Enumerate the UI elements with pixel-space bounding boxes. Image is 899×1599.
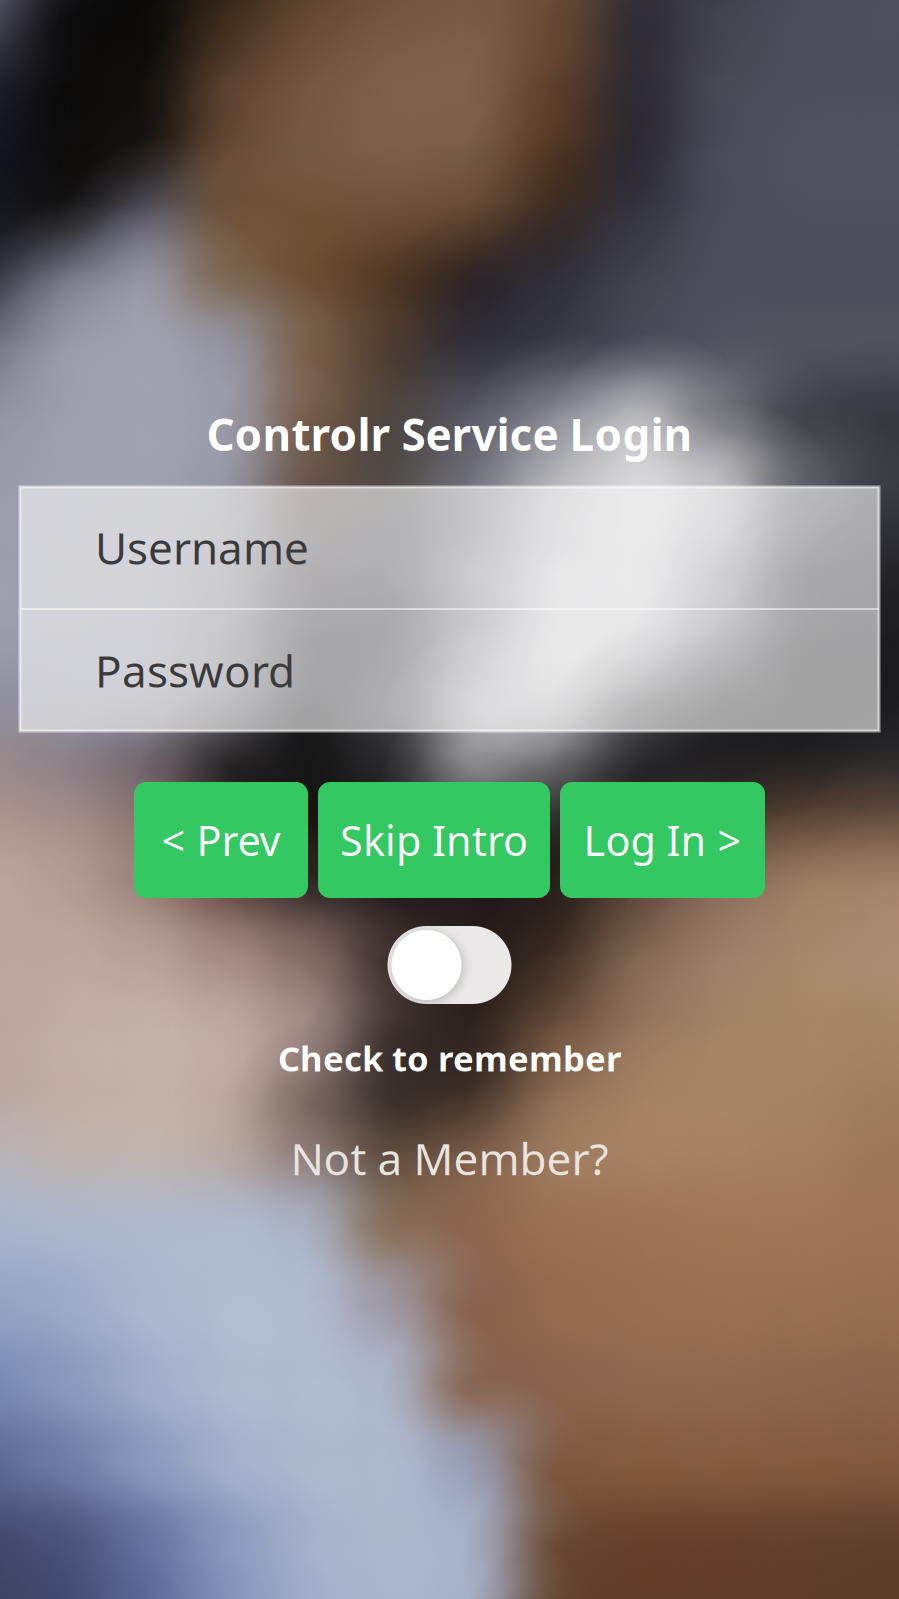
staticText: Skip Intro [340, 813, 528, 867]
staticText: Not a Member? [290, 1129, 608, 1187]
button[interactable]: < Prev [134, 782, 308, 898]
staticText: Check to remember [278, 1035, 621, 1081]
staticText: < Prev [161, 813, 280, 867]
staticText: Username [95, 518, 309, 577]
button[interactable]: Skip Intro [318, 782, 550, 898]
staticText: Controlr Service Login [206, 405, 692, 463]
staticText: Log In > [583, 813, 741, 867]
button[interactable]: Not a Member? [290, 1129, 608, 1187]
staticText: Password [95, 641, 295, 700]
button[interactable]: Log In > [560, 782, 765, 898]
button[interactable]: Check to remember [387, 926, 511, 1004]
